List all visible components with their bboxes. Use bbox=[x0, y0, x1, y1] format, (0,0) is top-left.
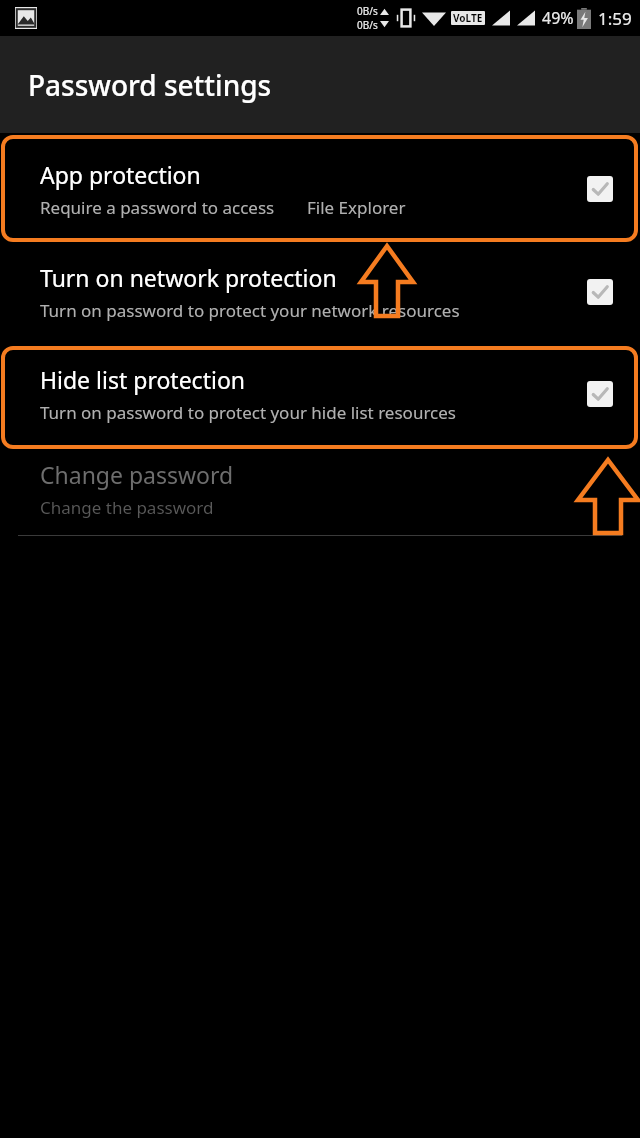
staticText: Turn on password to protect your hide li… bbox=[40, 401, 456, 424]
staticText: Hide list protection bbox=[40, 364, 246, 395]
staticText: 0B/s bbox=[357, 18, 378, 32]
button[interactable]: Toggle App protection bbox=[578, 167, 622, 211]
staticText: 1:59 bbox=[598, 7, 632, 30]
staticText: 49% bbox=[542, 7, 574, 29]
staticText: 0B/s bbox=[357, 4, 378, 18]
button[interactable]: Toggle Turn on network protection bbox=[578, 270, 622, 314]
staticText: VoLTE bbox=[453, 11, 483, 25]
staticText: Turn on password to protect your network… bbox=[40, 299, 460, 322]
staticText: File Explorer bbox=[307, 196, 406, 219]
button[interactable]: Toggle Hide list protection bbox=[578, 372, 622, 416]
staticText: App protection bbox=[40, 159, 201, 190]
button[interactable]: App protection bbox=[0, 137, 640, 240]
button[interactable]: Change password bbox=[0, 443, 640, 535]
button[interactable]: Turn on network protection bbox=[0, 240, 640, 344]
staticText: Change the password bbox=[40, 496, 214, 519]
button[interactable]: Hide list protection bbox=[0, 344, 640, 443]
staticText: Turn on network protection bbox=[40, 262, 337, 293]
staticText: Change password bbox=[40, 459, 234, 490]
staticText: Require a password to access bbox=[40, 196, 275, 219]
staticText: Password settings bbox=[28, 66, 272, 104]
